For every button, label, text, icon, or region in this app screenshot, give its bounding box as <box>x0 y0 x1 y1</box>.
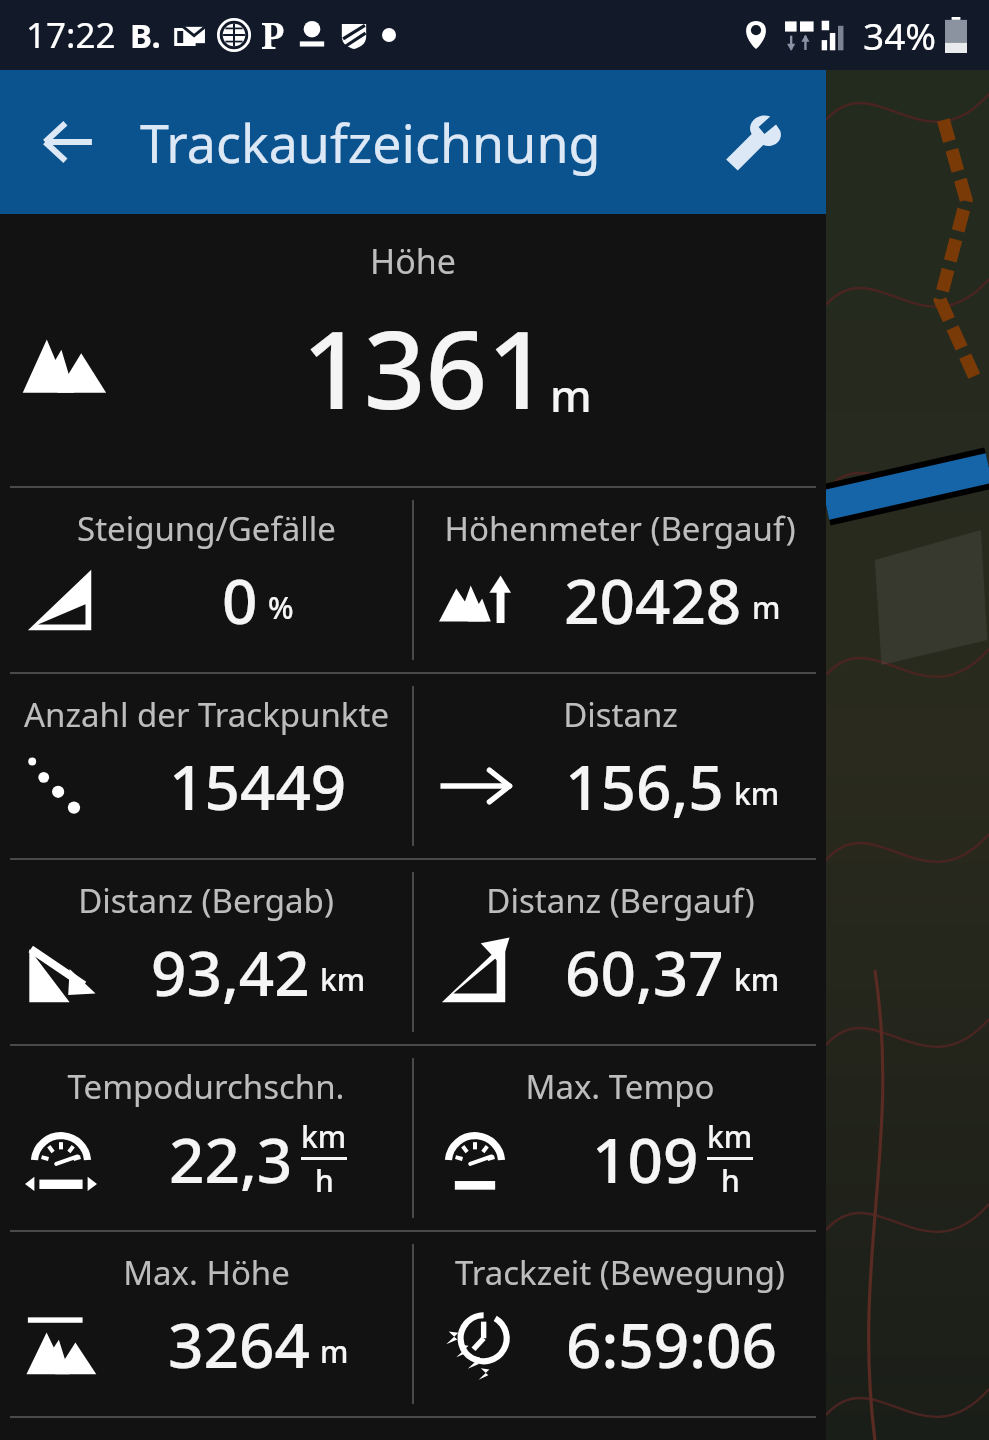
staticText: Anzahl der Trackpunkte <box>24 692 389 737</box>
staticText: Trackzeit (Bewegung) <box>455 1250 785 1295</box>
staticText: 3264 <box>168 1302 310 1386</box>
staticText: Distanz <box>563 692 678 737</box>
staticText: Tempodurchschn.(Bewegu. <box>6 1064 406 1109</box>
button[interactable]: Max. Tempo <box>414 1046 826 1230</box>
staticText: m <box>320 1331 349 1372</box>
button[interactable]: Distanz (Bergauf) <box>414 860 826 1044</box>
staticText: 60,37 <box>565 930 724 1014</box>
button[interactable]: Höhe <box>0 214 826 486</box>
button[interactable]: Zurück <box>26 100 110 184</box>
staticText: B. <box>130 13 161 58</box>
button[interactable]: Steigung/Gefälle <box>0 488 412 672</box>
staticText: 0 <box>222 558 258 642</box>
staticText: km <box>734 959 780 1000</box>
staticText: % <box>268 587 294 628</box>
button[interactable]: Höhenmeter (Bergauf) <box>414 488 826 672</box>
staticText: Höhe <box>370 238 456 284</box>
button[interactable]: Anzahl der Trackpunkte <box>0 674 412 858</box>
staticText: Distanz (Bergab) <box>78 878 334 923</box>
staticText: Max. Höhe <box>123 1250 290 1295</box>
staticText: m <box>752 587 781 628</box>
button[interactable]: Distanz (Bergab) <box>0 860 412 1044</box>
staticText: 93,42 <box>151 930 310 1014</box>
staticText: h <box>721 1160 740 1201</box>
staticText: 156,5 <box>565 744 724 828</box>
staticText: 6:59:06 <box>566 1302 778 1386</box>
staticText: km <box>734 773 780 814</box>
staticText: m <box>550 365 592 425</box>
staticText: Max. Tempo <box>525 1064 715 1109</box>
staticText: 34% <box>863 10 937 60</box>
button[interactable]: Distanz <box>414 674 826 858</box>
staticText: 22,3 <box>169 1117 293 1201</box>
staticText: Distanz (Bergauf) <box>486 878 755 923</box>
button[interactable]: Tempodurchschn.(Bewegu. <box>0 1046 412 1230</box>
staticText: Steigung/Gefälle <box>77 506 336 551</box>
staticText: 20428 <box>564 558 742 642</box>
staticText: 15449 <box>169 744 347 828</box>
staticText: Höhenmeter (Bergauf) <box>444 506 796 551</box>
staticText: km <box>301 1116 347 1157</box>
staticText: P <box>261 11 284 60</box>
staticText: h <box>315 1160 334 1201</box>
button[interactable]: Max. Höhe <box>0 1232 412 1416</box>
staticText: km <box>707 1116 753 1157</box>
button[interactable]: Einstellungen <box>712 100 796 184</box>
staticText: 109 <box>592 1117 699 1201</box>
staticText: km <box>320 959 366 1000</box>
staticText: Trackaufzeichnung <box>140 107 601 178</box>
button[interactable]: Trackzeit (Bewegung) <box>414 1232 826 1416</box>
staticText: 17:22 <box>26 11 116 59</box>
staticText: 1361 <box>302 294 550 441</box>
